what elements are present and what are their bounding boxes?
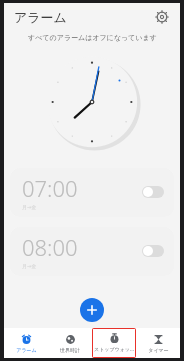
button[interactable]: Toggle alarm 07:00: [142, 186, 164, 198]
button[interactable]: タイマー: [136, 328, 180, 358]
staticText: タイマー: [148, 347, 169, 353]
staticText: アラーム: [16, 347, 37, 353]
staticText: 月→金: [22, 204, 37, 210]
staticText: 月→金: [22, 263, 37, 269]
staticText: アラーム: [14, 9, 67, 25]
staticText: 世界時計: [60, 347, 80, 353]
button[interactable]: ストップウォッ…: [92, 328, 136, 358]
button[interactable]: Add alarm: [80, 298, 104, 322]
button[interactable]: 07:00: [10, 168, 174, 217]
button[interactable]: 08:00: [10, 227, 174, 276]
staticText: 07:00: [22, 173, 78, 203]
button[interactable]: アラーム: [4, 328, 48, 358]
staticText: 08:00: [22, 232, 78, 262]
button[interactable]: Settings: [152, 7, 172, 27]
staticText: ストップウォッ…: [94, 346, 134, 353]
button[interactable]: Toggle alarm 08:00: [142, 245, 164, 257]
staticText: すべてのアラームはオフになっています: [28, 33, 157, 42]
button[interactable]: 世界時計: [48, 328, 92, 358]
